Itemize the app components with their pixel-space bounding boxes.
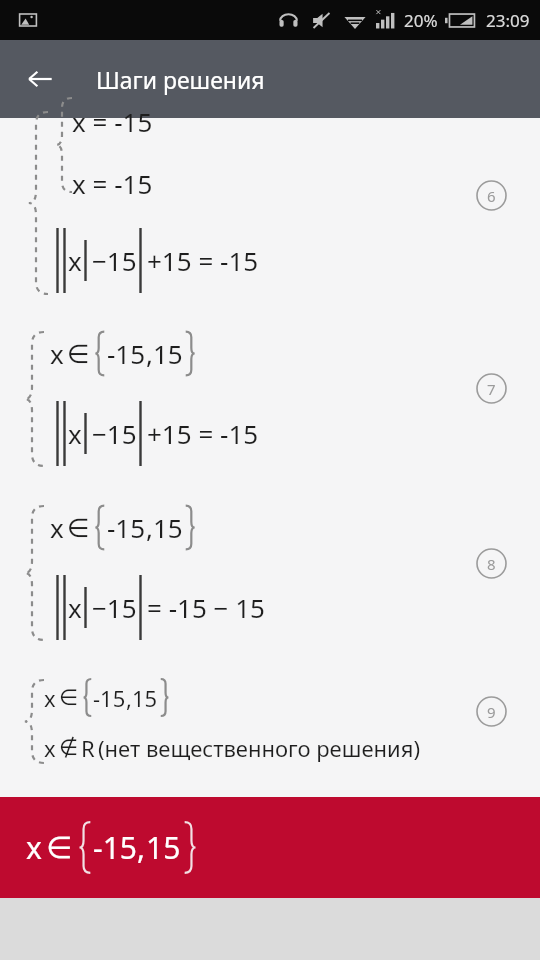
staticText: -15 xyxy=(107,510,146,545)
staticText: x xyxy=(68,243,82,278)
staticText: , xyxy=(146,336,153,371)
staticText: x = -15 xyxy=(72,104,153,139)
staticText: x xyxy=(68,590,82,625)
staticText: 15 xyxy=(146,827,181,868)
button[interactable]: x xyxy=(0,300,540,476)
staticText: , xyxy=(146,510,153,545)
staticText: 15 xyxy=(132,683,158,713)
staticText: = -15 − 15 xyxy=(147,590,265,625)
staticText: 8 xyxy=(487,554,496,574)
staticText: x xyxy=(50,510,64,545)
button[interactable]: x xyxy=(0,476,540,650)
staticText: ∈ xyxy=(59,685,79,711)
staticText: +15 = -15 xyxy=(147,243,259,278)
staticText: x xyxy=(44,733,56,763)
button[interactable]: x xyxy=(0,650,540,773)
button[interactable]: Back xyxy=(12,51,68,107)
staticText: -15 xyxy=(107,336,146,371)
staticText: −15 xyxy=(92,416,137,451)
staticText: 15 xyxy=(153,510,183,545)
staticText: 23:09 xyxy=(486,9,530,32)
staticText: , xyxy=(137,827,146,868)
staticText: , xyxy=(126,683,132,713)
staticText: ∈ xyxy=(67,339,90,369)
staticText: ∈ xyxy=(46,830,73,865)
staticText: 15 xyxy=(153,336,183,371)
staticText: +15 = -15 xyxy=(147,416,259,451)
staticText: R xyxy=(81,733,95,763)
staticText: 20% xyxy=(404,9,438,32)
staticText: (нет вещественного решения) xyxy=(98,733,420,763)
staticText: ∉ xyxy=(59,735,79,761)
staticText: 7 xyxy=(487,379,496,399)
staticText: x xyxy=(50,336,64,371)
staticText: -15 xyxy=(93,827,137,868)
staticText: x xyxy=(44,683,56,713)
staticText: x xyxy=(26,827,42,868)
staticText: 6 xyxy=(487,186,496,206)
staticText: x xyxy=(68,416,82,451)
staticText: -15 xyxy=(93,683,126,713)
staticText: −15 xyxy=(92,590,137,625)
staticText: −15 xyxy=(92,243,137,278)
staticText: Шаги решения xyxy=(96,64,265,95)
staticText: x = -15 xyxy=(72,166,153,201)
staticText: 9 xyxy=(487,702,496,722)
staticText: ∈ xyxy=(67,513,90,543)
button[interactable]: x xyxy=(0,797,540,898)
